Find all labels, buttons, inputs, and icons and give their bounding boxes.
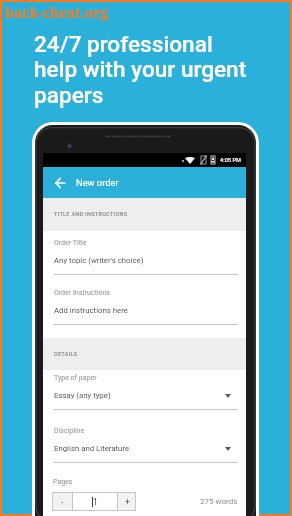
button[interactable]: Decrease pages [52,492,72,511]
staticText: Order Title [54,239,87,247]
staticText: Add instructions here [54,306,238,315]
staticText: Pages [53,478,73,486]
button[interactable]: Back [43,167,76,198]
staticText: 275 words [200,497,238,506]
staticText: + [125,497,130,507]
staticText: Essay (any type) [54,391,232,400]
staticText: Any topic (writer's choice) [54,256,238,265]
staticText: 4:05 PM [220,157,241,164]
staticText: Type of paper [54,374,97,382]
staticText: - [61,497,64,507]
staticText: Order Instructions [54,289,110,297]
staticText: TITLE AND INSTRUCTIONS [54,211,128,218]
staticText: 24/7 professional help with your urgent … [34,31,247,109]
staticText: Discipline [54,427,85,435]
staticText: back-cheat.org [5,3,109,22]
staticText: DETAILS [54,351,78,358]
staticText: English and Literature [54,444,232,453]
staticText: 1 [93,497,98,507]
staticText: New order [76,177,119,188]
button[interactable]: Increase pages [118,492,136,511]
